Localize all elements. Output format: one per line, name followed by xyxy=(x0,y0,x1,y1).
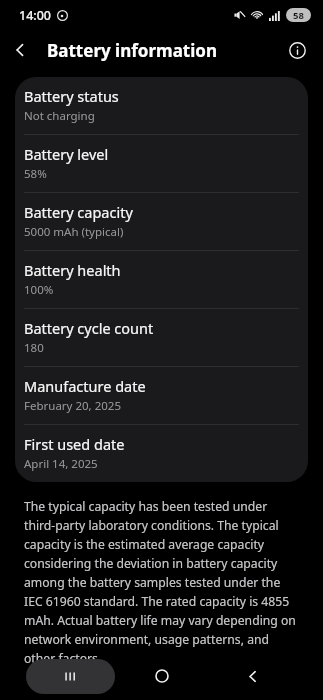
staticText: First used date xyxy=(24,434,125,454)
staticText: Not charging xyxy=(24,108,95,124)
button[interactable]: Battery capacity xyxy=(15,193,308,250)
staticText: Battery information xyxy=(47,39,217,62)
button[interactable]: Battery health xyxy=(15,251,308,308)
staticText: April 14, 2025 xyxy=(24,456,98,472)
button[interactable]: Battery status xyxy=(15,77,308,134)
staticText: 5000 mAh (typical) xyxy=(24,224,124,240)
staticText: Manufacture date xyxy=(24,376,146,396)
button[interactable]: Battery cycle count xyxy=(15,309,308,366)
button[interactable]: Back xyxy=(233,657,271,695)
staticText: Battery health xyxy=(24,260,121,280)
staticText: 180 xyxy=(24,340,44,356)
staticText: The typical capacity has been tested und… xyxy=(24,498,301,667)
button[interactable]: First used date xyxy=(15,425,308,482)
staticText: Battery status xyxy=(24,86,119,106)
staticText: Battery level xyxy=(24,144,109,164)
button[interactable]: Back xyxy=(0,30,40,70)
staticText: Battery cycle count xyxy=(24,318,154,338)
button[interactable]: Home xyxy=(143,657,181,695)
staticText: 58 xyxy=(293,9,304,22)
staticText: 58% xyxy=(24,166,47,182)
staticText: 100% xyxy=(24,282,54,298)
button[interactable]: Recents xyxy=(26,659,115,694)
staticText: Battery capacity xyxy=(24,202,133,222)
button[interactable]: Manufacture date xyxy=(15,367,308,424)
staticText: 14:00 xyxy=(19,7,52,24)
button[interactable]: Information xyxy=(282,35,312,65)
button[interactable]: Battery level xyxy=(15,135,308,192)
staticText: February 20, 2025 xyxy=(24,398,121,414)
